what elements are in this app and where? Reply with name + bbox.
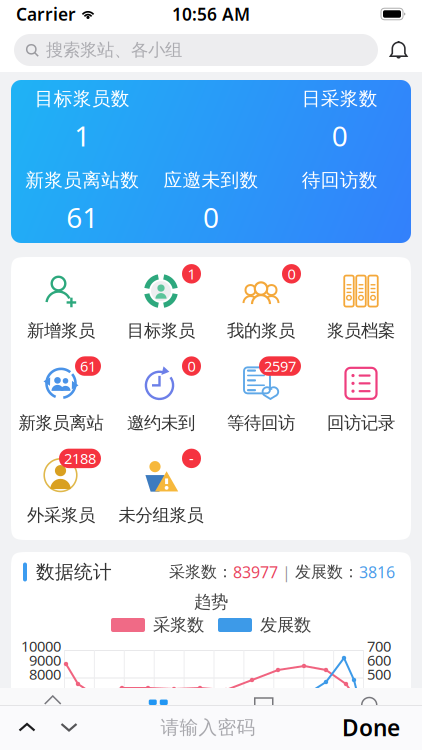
- staticText: 邀约未到: [127, 412, 195, 434]
- staticText: 3816: [359, 561, 395, 583]
- staticText: 0: [287, 264, 295, 284]
- staticText: -: [189, 449, 194, 468]
- button[interactable]: 上一项: [6, 707, 48, 747]
- staticText: 500: [367, 664, 391, 684]
- staticText: |: [278, 561, 295, 583]
- staticText: 8000: [29, 664, 61, 684]
- button[interactable]: 1: [111, 271, 211, 341]
- button[interactable]: 我的: [316, 693, 422, 705]
- button[interactable]: 浆员档案: [311, 271, 411, 341]
- staticText: 浆员档案: [327, 320, 395, 341]
- staticText: 61: [66, 199, 98, 236]
- staticText: 600: [367, 650, 391, 670]
- staticText: 10000: [21, 636, 61, 656]
- staticText: 外采浆员: [27, 505, 95, 526]
- button[interactable]: 61: [11, 363, 111, 434]
- button[interactable]: 消息: [211, 693, 316, 705]
- button[interactable]: 0: [111, 363, 211, 434]
- button[interactable]: 工作台: [105, 693, 211, 705]
- staticText: 回访记录: [327, 412, 395, 434]
- staticText: 1: [74, 117, 90, 154]
- staticText: 新增浆员: [27, 320, 95, 341]
- staticText: 目标浆员数: [35, 87, 130, 110]
- staticText: 61: [80, 356, 96, 376]
- button[interactable]: 2597: [211, 363, 311, 434]
- button[interactable]: 回访记录: [311, 363, 411, 434]
- staticText: 日采浆数: [302, 87, 378, 110]
- staticText: 请输入密码: [160, 716, 255, 739]
- staticText: 0: [203, 199, 219, 236]
- staticText: Done: [342, 712, 400, 742]
- staticText: 2597: [264, 356, 296, 376]
- button[interactable]: 新增浆员: [11, 271, 111, 341]
- staticText: Carrier: [16, 2, 76, 25]
- staticText: 发展数：: [295, 562, 359, 582]
- button[interactable]: 搜索浆站、各小组: [14, 34, 378, 66]
- button[interactable]: -: [111, 456, 211, 526]
- staticText: 采浆数：: [169, 562, 233, 582]
- staticText: 83977: [233, 561, 278, 583]
- button[interactable]: 2188: [11, 456, 111, 526]
- button[interactable]: 通知: [389, 40, 408, 60]
- staticText: 发展数: [260, 614, 311, 636]
- button[interactable]: 下一项: [48, 707, 90, 747]
- staticText: 数据统计: [36, 560, 112, 583]
- staticText: 0: [332, 117, 348, 154]
- button[interactable]: 首页: [0, 693, 105, 705]
- staticText: 10:56 AM: [172, 2, 250, 25]
- staticText: 未分组浆员: [118, 505, 203, 526]
- staticText: 等待回访: [227, 412, 295, 434]
- staticText: 应邀未到数: [163, 169, 258, 192]
- staticText: 0: [187, 356, 195, 376]
- staticText: 采浆数: [153, 614, 204, 636]
- staticText: 700: [367, 636, 391, 656]
- button[interactable]: Done: [326, 707, 416, 747]
- staticText: 9000: [29, 650, 61, 670]
- staticText: 新浆员离站: [18, 412, 103, 434]
- button[interactable]: 0: [211, 271, 311, 341]
- staticText: 新浆员离站数: [25, 169, 139, 192]
- staticText: 搜索浆站、各小组: [46, 39, 182, 61]
- staticText: 我的浆员: [227, 320, 295, 341]
- staticText: 1: [187, 264, 195, 284]
- staticText: 趋势: [194, 591, 228, 613]
- staticText: 2188: [64, 449, 96, 468]
- staticText: 目标浆员: [127, 320, 195, 341]
- staticText: 待回访数: [302, 169, 378, 192]
